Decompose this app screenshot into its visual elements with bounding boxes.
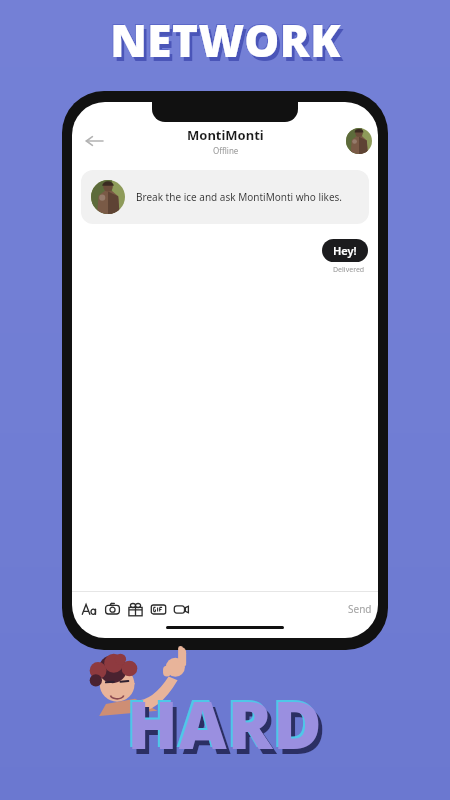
- staticText: Break the ice and ask MontiMonti who lik…: [136, 190, 343, 204]
- button[interactable]: Gift: [125, 599, 145, 619]
- button[interactable]: Break the ice and ask MontiMonti who lik…: [81, 170, 369, 224]
- staticText: Offline: [213, 145, 239, 156]
- button[interactable]: Video: [171, 599, 191, 619]
- button[interactable]: Hey!: [322, 239, 368, 262]
- button[interactable]: Camera: [102, 599, 122, 619]
- staticText: Delivered: [333, 265, 365, 275]
- button[interactable]: Text format: [79, 599, 99, 619]
- staticText: HARD: [125, 676, 321, 766]
- staticText: NETWORK: [113, 14, 344, 74]
- staticText: NETWORK: [110, 10, 341, 70]
- staticText: MontiMonti: [187, 126, 264, 144]
- button[interactable]: Profile: [346, 128, 372, 154]
- button[interactable]: GIF: [148, 599, 168, 619]
- staticText: Hey!: [333, 243, 357, 258]
- staticText: HARD: [127, 678, 323, 768]
- button[interactable]: Back: [76, 123, 112, 159]
- button[interactable]: Send: [348, 602, 372, 616]
- staticText: HARD: [131, 683, 327, 773]
- staticText: NETWORK: [109, 9, 340, 69]
